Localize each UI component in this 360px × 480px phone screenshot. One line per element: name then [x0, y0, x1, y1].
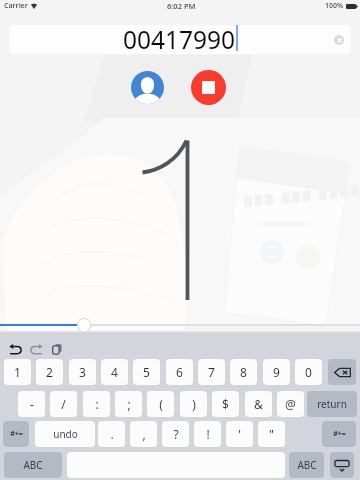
staticText: (	[159, 396, 163, 412]
staticText: #+=	[333, 429, 346, 439]
staticText: 1	[14, 364, 21, 380]
button[interactable]: #+=	[322, 421, 356, 447]
button[interactable]: -	[18, 391, 45, 417]
button[interactable]: Redo	[26, 339, 46, 359]
staticText: -	[30, 396, 34, 412]
staticText: $	[222, 396, 229, 412]
button[interactable]: &	[245, 391, 272, 417]
staticText: 2	[46, 364, 53, 380]
button[interactable]: '	[226, 421, 253, 447]
button[interactable]: 7	[198, 359, 225, 385]
button[interactable]: Clear text	[334, 35, 344, 45]
button[interactable]: 0	[295, 359, 322, 385]
staticText: ;	[127, 396, 131, 412]
button[interactable]: Backspace	[328, 359, 356, 385]
staticText: 3	[79, 364, 86, 380]
button[interactable]: !	[194, 421, 221, 447]
button[interactable]: (	[147, 391, 174, 417]
button[interactable]: return	[307, 391, 357, 417]
button[interactable]: #+=	[3, 421, 29, 447]
button[interactable]: "	[258, 421, 285, 447]
button[interactable]: ,	[130, 421, 157, 447]
button[interactable]: :	[83, 391, 110, 417]
button[interactable]: 2	[36, 359, 63, 385]
button[interactable]: Undo	[6, 339, 26, 359]
button[interactable]: .	[98, 421, 125, 447]
staticText: 9	[273, 364, 280, 380]
staticText: 6	[176, 364, 183, 380]
button[interactable]: Contacts	[131, 71, 164, 104]
button[interactable]: Stop recording	[191, 70, 226, 105]
button[interactable]: 8	[230, 359, 257, 385]
button[interactable]: 00417990	[9, 25, 351, 54]
staticText: :	[95, 396, 99, 412]
staticText: ABC	[297, 458, 317, 472]
button[interactable]: /	[50, 391, 77, 417]
staticText: ABC	[23, 458, 43, 472]
staticText: "	[269, 426, 274, 442]
staticText: #+=	[10, 429, 23, 439]
staticText: /	[61, 396, 66, 412]
button[interactable]: Hide keyboard	[330, 452, 354, 478]
button[interactable]: @	[277, 391, 304, 417]
staticText: 7	[208, 364, 215, 380]
button[interactable]: ABC	[4, 452, 62, 478]
staticText: '	[238, 426, 241, 442]
button[interactable]: $	[212, 391, 239, 417]
staticText: Carrier	[4, 1, 28, 11]
button[interactable]: undo	[35, 421, 95, 447]
staticText: ,	[142, 426, 146, 442]
button[interactable]: ?	[162, 421, 189, 447]
staticText: !	[206, 426, 210, 442]
staticText: 0	[305, 364, 312, 380]
staticText: .	[110, 426, 114, 442]
button[interactable]: 5	[133, 359, 160, 385]
staticText: 00417990	[123, 25, 236, 52]
staticText: 4	[111, 364, 118, 380]
button[interactable]: 1	[4, 359, 31, 385]
staticText: ?	[173, 426, 179, 442]
button[interactable]: Playback position	[0, 318, 360, 332]
button[interactable]: ;	[115, 391, 142, 417]
button[interactable]: )	[180, 391, 207, 417]
button[interactable]: 4	[101, 359, 128, 385]
staticText: 8	[240, 364, 247, 380]
button[interactable]: ABC	[289, 452, 324, 478]
staticText: &	[254, 396, 263, 412]
staticText: )	[192, 396, 196, 412]
button[interactable]: 6	[166, 359, 193, 385]
staticText: 100%	[325, 1, 344, 11]
button[interactable]: 3	[69, 359, 96, 385]
button[interactable]: Paste	[48, 339, 68, 359]
staticText: 6:02 PM	[167, 1, 196, 11]
button[interactable]: 9	[263, 359, 290, 385]
staticText: 5	[143, 364, 150, 380]
staticText: undo	[53, 427, 78, 441]
staticText: return	[317, 397, 347, 411]
staticText: @	[285, 396, 296, 412]
